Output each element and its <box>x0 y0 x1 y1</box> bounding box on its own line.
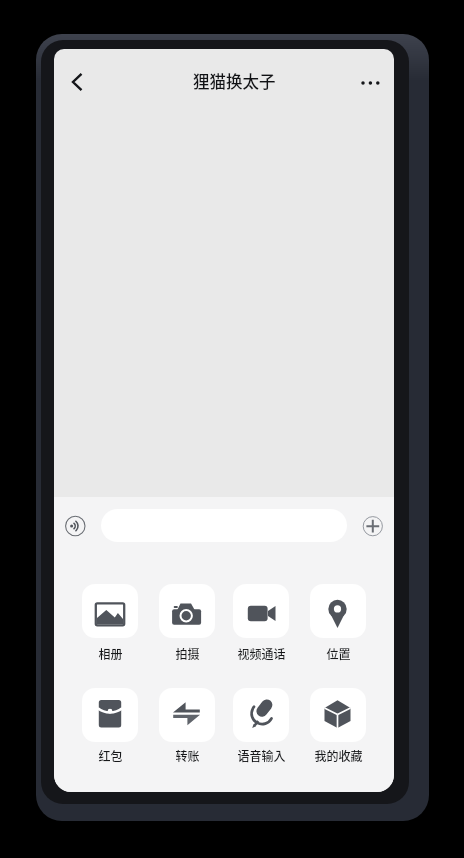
button[interactable] <box>310 584 366 638</box>
button[interactable] <box>65 515 86 536</box>
staticText: 相册 <box>98 645 123 662</box>
button[interactable] <box>310 688 366 742</box>
button[interactable] <box>159 584 215 638</box>
button[interactable] <box>159 688 215 742</box>
button[interactable] <box>233 584 289 638</box>
staticText: 转账 <box>175 747 200 764</box>
staticText: 位置 <box>326 645 351 662</box>
button[interactable] <box>59 64 95 100</box>
staticText: 狸猫换太子 <box>193 69 276 93</box>
staticText: 拍摄 <box>175 645 200 662</box>
button[interactable] <box>82 688 138 742</box>
button[interactable] <box>82 584 138 638</box>
staticText: 我的收藏 <box>314 747 363 764</box>
staticText: 视频通话 <box>237 645 286 662</box>
button[interactable] <box>233 688 289 742</box>
staticText: 红包 <box>98 747 123 764</box>
button[interactable] <box>363 516 383 536</box>
button[interactable] <box>352 65 388 101</box>
staticText: 语音输入 <box>237 747 286 764</box>
